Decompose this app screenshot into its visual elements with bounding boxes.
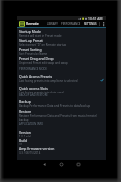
button[interactable]: Restore — [17, 108, 106, 122]
button[interactable]: Quick access Slots — [17, 85, 106, 93]
staticText: Startup Mode — [19, 29, 41, 34]
button[interactable]: Recent apps — [75, 160, 82, 168]
staticText: 1.0.1 n/d — [19, 135, 31, 137]
staticText: Quick access Slots — [19, 86, 48, 91]
staticText: SETTINGS — [84, 22, 97, 26]
staticText: Last facing presets into slots used — [19, 91, 64, 93]
button[interactable]: More options — [102, 20, 105, 27]
button[interactable]: SETTINGS — [84, 20, 97, 27]
button[interactable]: Amp firmware version — [17, 145, 106, 154]
button[interactable]: Preset Drag and Drop — [17, 55, 106, 67]
staticText: PERFORMANCE — [61, 22, 81, 26]
staticText: Last facing presets into amp/tone is sel… — [19, 79, 78, 83]
staticText: 3.3 / 08/15/2014 — [19, 151, 41, 154]
button[interactable]: Back — [41, 160, 48, 168]
button[interactable]: Home — [58, 160, 65, 168]
staticText: Build — [19, 138, 28, 143]
staticText: Amp firmware version — [19, 146, 55, 151]
button[interactable]: Start-up Preset — [17, 37, 106, 46]
staticText: Unpinned Preset edit swap and swap — [19, 61, 68, 65]
staticText: Backup — [19, 99, 31, 104]
button[interactable]: PERFORMANCE — [61, 20, 81, 27]
button[interactable]: Build — [17, 137, 106, 145]
staticText: Quick Access Presets — [19, 74, 53, 79]
staticText: Remote — [26, 21, 39, 26]
staticText: Select preset "D" on Remote startup — [19, 43, 67, 46]
staticText: Preset Drag and Drop — [19, 56, 54, 61]
staticText: PERFORMANCE MODE — [19, 67, 48, 71]
staticText: Version — [19, 130, 31, 135]
staticText: Backup Performance Data and Presets to d… — [19, 104, 91, 108]
staticText: Start-up Preset — [19, 38, 43, 43]
button[interactable]: Quick Access Presets — [17, 73, 106, 85]
button[interactable]: Startup Mode — [17, 28, 106, 37]
staticText: Restore Performance Data and Presets fro… — [19, 114, 104, 122]
button[interactable]: LIBRARY — [47, 20, 58, 27]
staticText: Preset Sorting — [19, 47, 42, 52]
staticText: Remote will start in Preset mode — [19, 34, 62, 37]
staticText: 31 — [19, 143, 23, 145]
staticText: Restore — [19, 109, 32, 114]
button[interactable]: Preset Sorting — [17, 46, 106, 55]
staticText: APPLICATION INFO — [19, 122, 44, 126]
staticText: BACKUP AND RESTORE — [19, 93, 48, 97]
button[interactable]: Backup — [17, 98, 106, 108]
staticText: Sort Presets by Name — [19, 52, 48, 55]
staticText: 10:51 AM — [88, 16, 103, 20]
staticText: LIBRARY — [47, 22, 58, 26]
button[interactable]: Version — [17, 129, 106, 137]
